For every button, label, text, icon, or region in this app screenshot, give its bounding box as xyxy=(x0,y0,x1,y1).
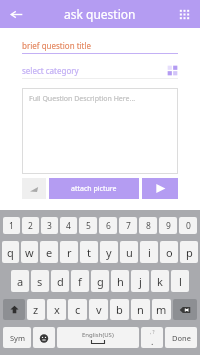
button[interactable]: 0 xyxy=(179,217,197,234)
button[interactable]: m xyxy=(152,299,171,320)
button[interactable]: o xyxy=(160,241,178,263)
staticText: d xyxy=(57,274,64,289)
button[interactable]: d xyxy=(51,270,69,292)
staticText: 6 xyxy=(106,220,111,232)
button[interactable]: r xyxy=(60,241,78,263)
staticText: n xyxy=(137,302,144,317)
button[interactable]: q xyxy=(2,241,19,263)
staticText: h xyxy=(117,274,124,289)
button[interactable]: j xyxy=(131,270,149,292)
button[interactable]: p xyxy=(180,241,198,263)
button[interactable]: l xyxy=(171,270,189,292)
staticText: Sym xyxy=(10,333,25,343)
staticText: o xyxy=(166,245,173,260)
staticText: c xyxy=(75,302,81,317)
staticText: 7 xyxy=(126,220,131,232)
staticText: q xyxy=(7,245,14,260)
button[interactable]: e xyxy=(40,241,58,263)
button[interactable]: Back xyxy=(3,1,29,27)
button[interactable]: g xyxy=(91,270,109,292)
button[interactable]: z xyxy=(27,299,45,320)
staticText: r xyxy=(67,245,72,260)
button[interactable]: Send xyxy=(142,178,178,199)
staticText: j xyxy=(139,274,142,289)
staticText: Full Question Description Here... xyxy=(29,94,136,104)
button[interactable]: 5 xyxy=(79,217,97,234)
button[interactable]: brief question title xyxy=(22,38,178,53)
button[interactable]: n xyxy=(131,299,150,320)
button[interactable]: 9 xyxy=(159,217,177,234)
button[interactable]: 4 xyxy=(60,217,77,234)
button[interactable]: 6 xyxy=(99,217,117,234)
button[interactable]: t xyxy=(80,241,98,263)
button[interactable]: b xyxy=(110,299,129,320)
button[interactable]: k xyxy=(151,270,169,292)
staticText: y xyxy=(106,245,112,260)
button[interactable]: Done xyxy=(165,327,197,348)
staticText: x xyxy=(54,302,60,317)
button[interactable]: 1 xyxy=(3,217,20,234)
staticText: 3 xyxy=(47,220,52,232)
staticText: z xyxy=(33,302,39,317)
button[interactable]: Sym xyxy=(3,327,31,348)
staticText: b xyxy=(116,302,123,317)
staticText: 4 xyxy=(66,220,71,232)
button[interactable]: 8 xyxy=(139,217,157,234)
staticText: m xyxy=(156,302,167,317)
staticText: 5 xyxy=(86,220,91,232)
staticText: l xyxy=(179,274,182,289)
staticText: brief question title xyxy=(22,40,92,51)
staticText: ask question xyxy=(64,6,136,22)
staticText: f xyxy=(78,274,82,289)
staticText: u xyxy=(126,245,133,260)
staticText: Done xyxy=(172,333,191,343)
staticText: i xyxy=(148,245,151,260)
button[interactable]: x xyxy=(47,299,66,320)
staticText: w xyxy=(25,245,34,260)
staticText: 8 xyxy=(146,220,151,232)
button[interactable]: h xyxy=(111,270,129,292)
button[interactable]: Backspace xyxy=(173,299,197,320)
staticText: English(US) xyxy=(82,331,114,339)
button[interactable]: 3 xyxy=(41,217,58,234)
button[interactable]: c xyxy=(68,299,87,320)
button[interactable]: v xyxy=(89,299,108,320)
staticText: 0 xyxy=(186,220,191,232)
staticText: p xyxy=(186,245,193,260)
staticText: a xyxy=(17,274,24,289)
button[interactable]: Space xyxy=(57,327,139,348)
button[interactable]: u xyxy=(120,241,138,263)
button[interactable]: Apps xyxy=(173,3,195,25)
button[interactable]: 2 xyxy=(22,217,39,234)
staticText: . xyxy=(151,335,154,347)
staticText: t xyxy=(87,245,91,260)
staticText: 2 xyxy=(28,220,33,232)
button[interactable]: i xyxy=(140,241,158,263)
staticText: g xyxy=(97,274,104,289)
staticText: k xyxy=(157,274,163,289)
staticText: e xyxy=(46,245,53,260)
button[interactable]: 7 xyxy=(119,217,137,234)
staticText: s xyxy=(37,274,43,289)
button[interactable]: y xyxy=(100,241,118,263)
button[interactable]: Full Question Description Here... xyxy=(22,88,178,174)
button[interactable]: Picture preview xyxy=(22,178,46,199)
staticText: select category xyxy=(22,65,167,76)
staticText: v xyxy=(96,302,102,317)
button[interactable]: , ? xyxy=(141,327,163,348)
button[interactable]: Emoji xyxy=(33,327,55,348)
staticText: 1 xyxy=(9,220,14,232)
staticText: , ? xyxy=(150,329,155,335)
staticText: attach picture xyxy=(71,184,117,194)
button[interactable]: a xyxy=(11,270,29,292)
button[interactable]: s xyxy=(31,270,49,292)
button[interactable]: f xyxy=(71,270,89,292)
staticText: 9 xyxy=(166,220,171,232)
button[interactable]: Shift xyxy=(3,299,25,320)
button[interactable]: w xyxy=(21,241,38,263)
button[interactable]: select category xyxy=(22,62,178,78)
button[interactable]: attach picture xyxy=(49,178,139,199)
